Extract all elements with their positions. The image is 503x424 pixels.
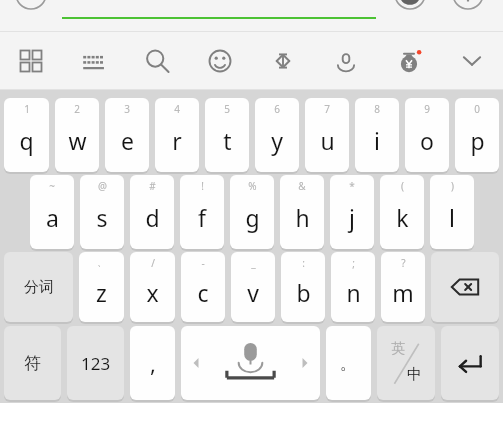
button[interactable]: ( xyxy=(380,175,424,249)
button[interactable]: Voice input xyxy=(8,0,54,10)
staticText: g xyxy=(245,202,260,233)
button[interactable]: Cursor xyxy=(251,32,314,89)
button[interactable]: & xyxy=(280,175,324,249)
button[interactable]: Keyboard xyxy=(62,32,125,89)
staticText: h xyxy=(295,202,310,233)
staticText: b xyxy=(296,277,311,308)
staticText: 8 xyxy=(374,102,380,116)
button[interactable]: Search xyxy=(125,32,188,89)
button[interactable]: / xyxy=(130,252,175,322)
staticText: 3 xyxy=(124,102,130,116)
staticText: d xyxy=(145,202,160,233)
button[interactable]: Hide keyboard xyxy=(440,32,503,89)
staticText: a xyxy=(46,202,59,233)
staticText: 123 xyxy=(81,352,111,375)
button[interactable]: 分词 xyxy=(4,252,73,322)
staticText: x xyxy=(146,277,159,308)
button[interactable]: 1 xyxy=(4,98,49,172)
staticText: 中 xyxy=(407,365,422,384)
staticText: 、 xyxy=(97,256,107,269)
staticText: p xyxy=(470,125,485,156)
button[interactable]: ) xyxy=(430,175,474,249)
staticText: 9 xyxy=(424,102,430,116)
button[interactable]: 4 xyxy=(155,98,199,172)
button[interactable]: Emoji xyxy=(388,0,432,10)
staticText: ! xyxy=(201,179,204,193)
other: Space xyxy=(181,326,320,400)
staticText: - xyxy=(201,256,205,270)
button[interactable]: @ xyxy=(80,175,124,249)
button[interactable]: - xyxy=(181,252,225,322)
button[interactable]: , xyxy=(130,326,175,400)
staticText: 0 xyxy=(474,102,480,116)
button[interactable]: 3 xyxy=(105,98,149,172)
button[interactable]: ; xyxy=(331,252,375,322)
button[interactable]: 。 xyxy=(326,326,371,400)
staticText: v xyxy=(247,277,259,308)
staticText: q xyxy=(19,125,34,156)
other: Enter xyxy=(441,326,499,400)
button[interactable]: Voice xyxy=(314,32,377,89)
staticText: @ xyxy=(98,179,107,193)
button[interactable]: _ xyxy=(231,252,275,322)
button[interactable]: Enter xyxy=(441,326,499,400)
staticText: k xyxy=(396,202,409,233)
staticText: 5 xyxy=(224,102,230,116)
staticText: 4 xyxy=(174,102,180,116)
staticText: 英 xyxy=(391,340,405,358)
button[interactable]: 符 xyxy=(4,326,61,400)
button[interactable]: ~ xyxy=(30,175,74,249)
button[interactable]: Backspace xyxy=(431,252,499,322)
staticText: 6 xyxy=(274,102,280,116)
button[interactable]: Emoticons xyxy=(188,32,251,89)
staticText: i xyxy=(374,125,380,156)
button[interactable]: 5 xyxy=(205,98,249,172)
staticText: , xyxy=(150,348,156,378)
staticText: u xyxy=(320,125,335,156)
staticText: o xyxy=(420,125,434,156)
button[interactable]: Rewards xyxy=(377,32,440,89)
staticText: ~ xyxy=(49,179,55,193)
staticText: j xyxy=(349,202,355,233)
button[interactable]: 6 xyxy=(255,98,299,172)
staticText: # xyxy=(149,179,156,193)
staticText: _ xyxy=(251,256,256,270)
button[interactable]: : xyxy=(281,252,325,322)
staticText: : xyxy=(302,256,305,270)
button[interactable]: 7 xyxy=(305,98,349,172)
staticText: 7 xyxy=(324,102,330,116)
staticText: ? xyxy=(401,256,406,270)
button[interactable]: * xyxy=(330,175,374,249)
button[interactable]: 8 xyxy=(355,98,399,172)
button[interactable]: ? xyxy=(381,252,425,322)
staticText: 符 xyxy=(24,353,41,374)
staticText: t xyxy=(223,125,232,156)
staticText: ( xyxy=(401,179,404,193)
staticText: f xyxy=(198,202,206,233)
staticText: w xyxy=(68,125,87,156)
button[interactable]: Grid xyxy=(0,32,62,89)
button[interactable]: Space xyxy=(181,326,320,400)
staticText: 1 xyxy=(24,102,30,116)
button[interactable]: % xyxy=(230,175,274,249)
button[interactable]: Switch Chinese English xyxy=(377,326,435,400)
staticText: % xyxy=(248,179,257,193)
staticText: m xyxy=(392,277,414,308)
staticText: s xyxy=(96,202,108,233)
button[interactable]: 123 xyxy=(67,326,124,400)
button[interactable]: 9 xyxy=(405,98,449,172)
staticText: & xyxy=(298,179,306,193)
staticText: 2 xyxy=(74,102,80,116)
staticText: * xyxy=(349,179,355,193)
button[interactable]: ! xyxy=(180,175,224,249)
button[interactable]: More xyxy=(446,0,490,10)
staticText: ) xyxy=(451,179,454,193)
button[interactable]: # xyxy=(130,175,174,249)
button[interactable]: 0 xyxy=(455,98,499,172)
staticText: n xyxy=(346,277,361,308)
staticText: c xyxy=(197,277,209,308)
button[interactable]: 2 xyxy=(55,98,99,172)
staticText: z xyxy=(96,277,107,308)
button[interactable]: 、 xyxy=(79,252,124,322)
other: Backspace xyxy=(431,252,499,322)
